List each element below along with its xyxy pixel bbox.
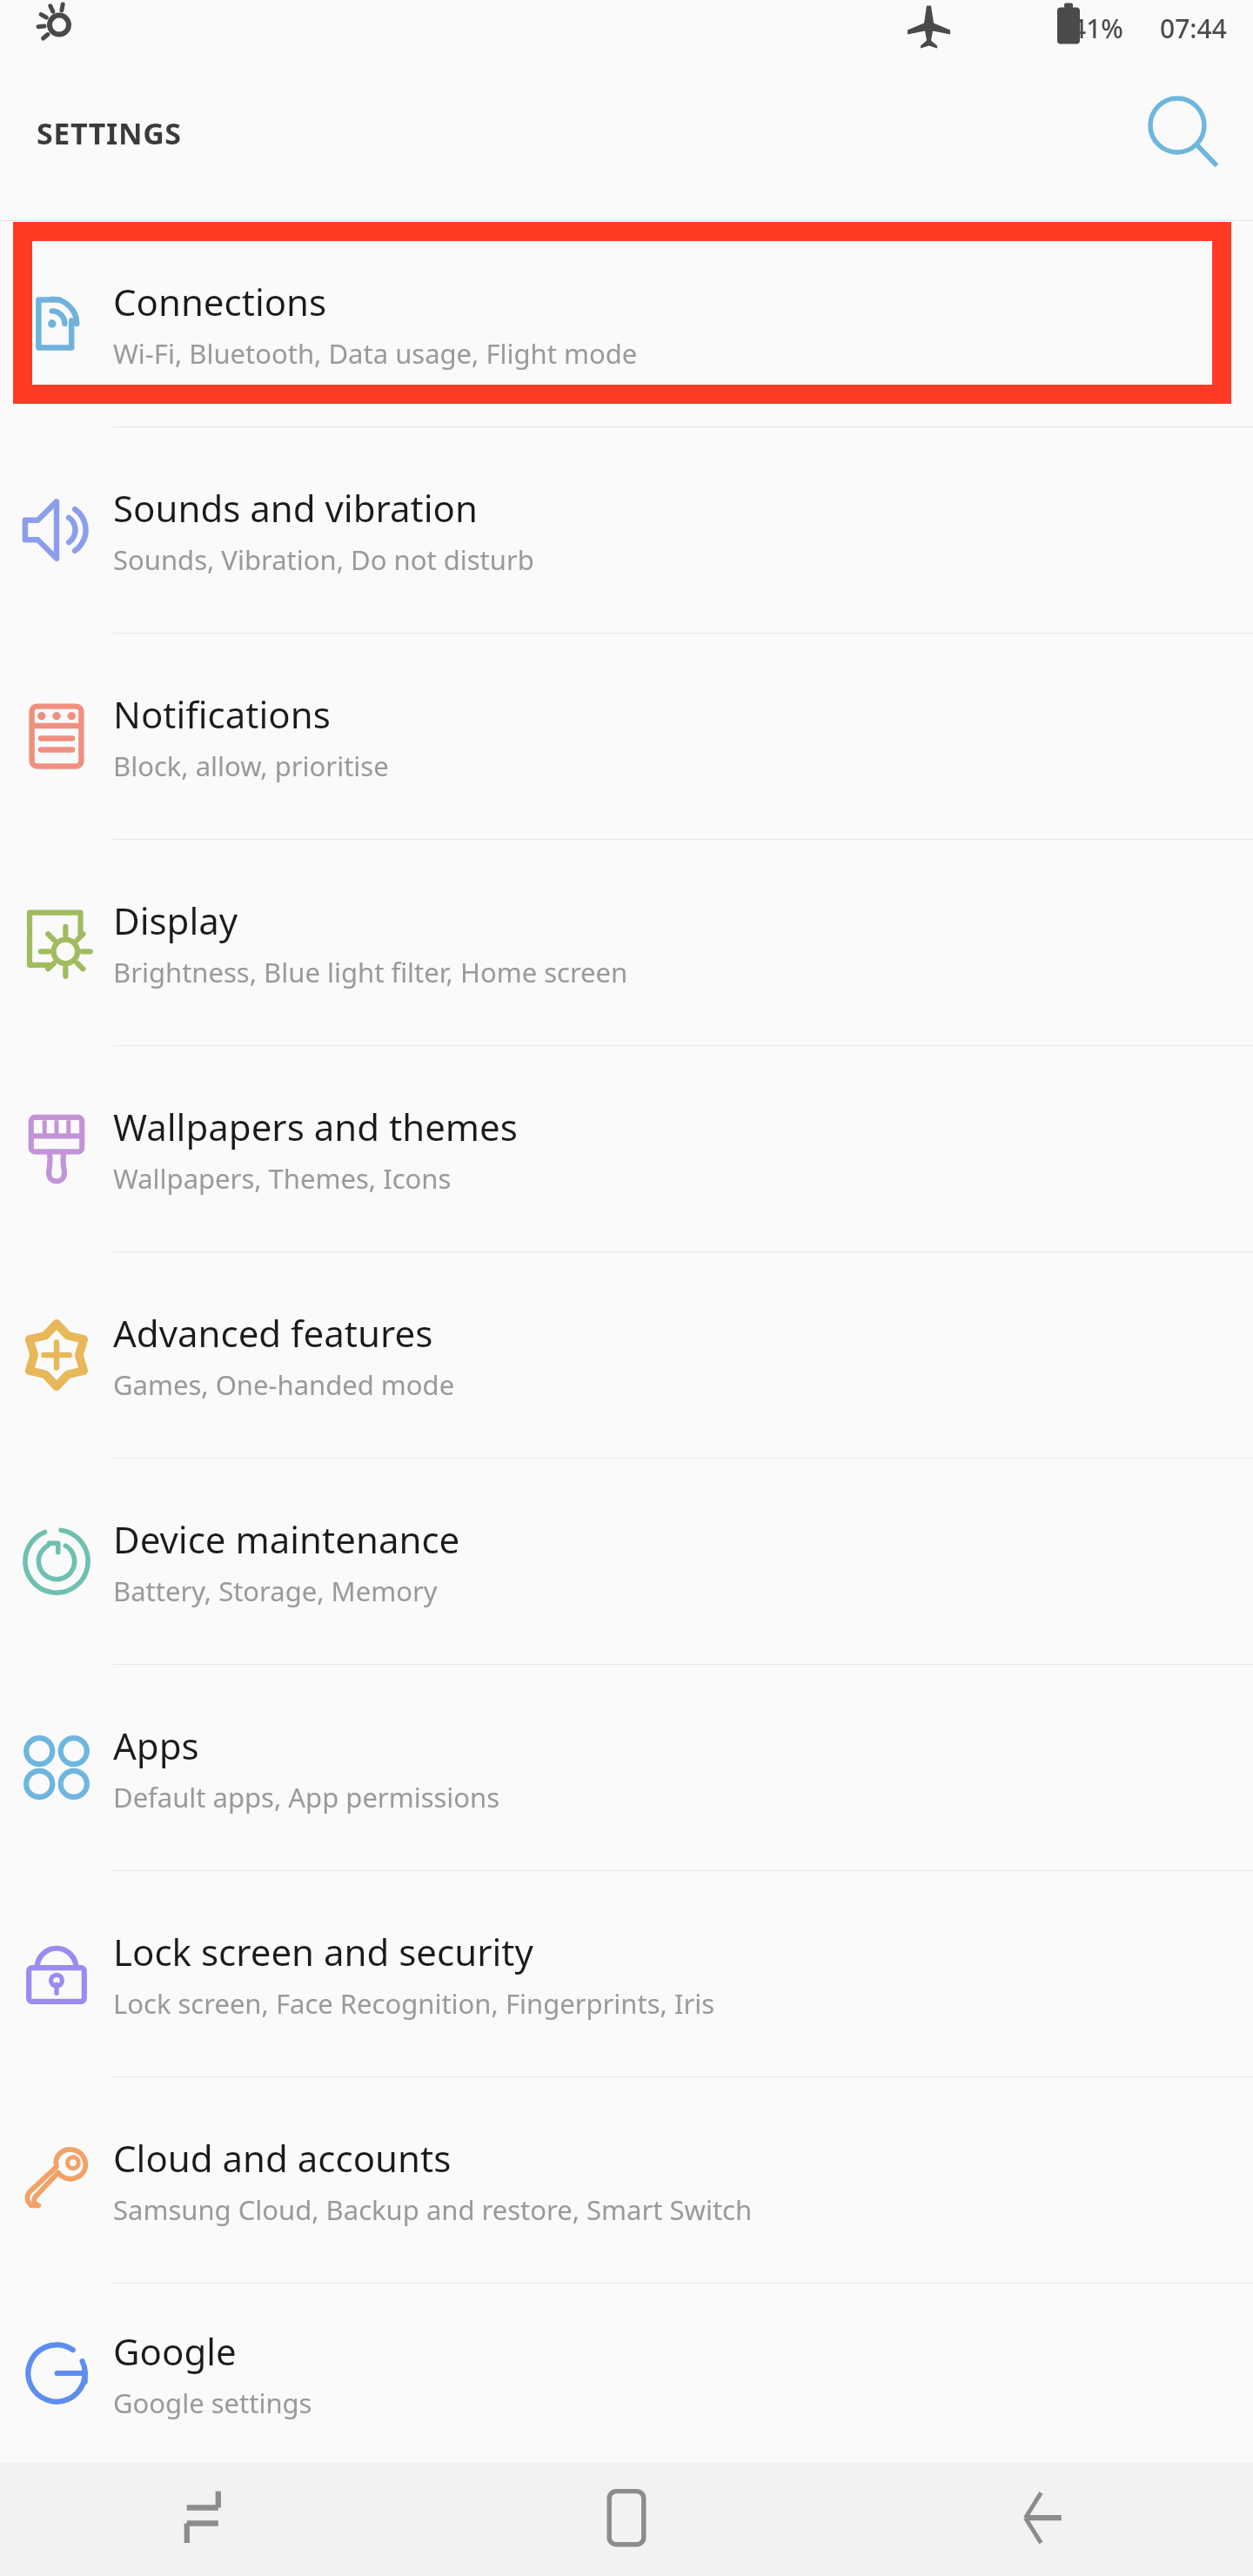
button[interactable]: Advanced features xyxy=(0,1252,1253,1458)
staticText: SETTINGS xyxy=(37,113,182,153)
staticText: Block, allow, prioritise xyxy=(113,748,389,784)
staticText: Apps xyxy=(113,1721,199,1770)
button[interactable]: Sounds and vibration xyxy=(0,427,1253,633)
button[interactable]: Connections xyxy=(0,221,1253,426)
staticText: Games, One-handed mode xyxy=(113,1366,455,1403)
staticText: Sounds, Vibration, Do not disturb xyxy=(113,541,534,578)
staticText: Lock screen and security xyxy=(113,1927,533,1976)
staticText: Notifications xyxy=(113,689,331,739)
staticText: Wallpapers and themes xyxy=(113,1102,518,1151)
staticText: Google settings xyxy=(113,2385,312,2421)
button[interactable]: Back xyxy=(835,2463,1253,2576)
button[interactable]: Search xyxy=(1135,84,1230,180)
button[interactable]: Notifications xyxy=(0,634,1253,839)
staticText: Battery, Storage, Memory xyxy=(113,1573,438,1609)
button[interactable]: Google xyxy=(0,2284,1253,2463)
staticText: Google xyxy=(113,2326,237,2376)
staticText: Device maintenance xyxy=(113,1514,460,1564)
staticText: 41% xyxy=(1071,10,1123,46)
staticText: Wallpapers, Themes, Icons xyxy=(113,1160,452,1197)
staticText: Cloud and accounts xyxy=(113,2133,452,2183)
button[interactable]: Device maintenance xyxy=(0,1459,1253,1664)
staticText: Advanced features xyxy=(113,1308,433,1358)
staticText: Lock screen, Face Recognition, Fingerpri… xyxy=(113,1985,715,2022)
staticText: 07:44 xyxy=(1160,10,1227,46)
staticText: Wi-Fi, Bluetooth, Data usage, Flight mod… xyxy=(113,335,638,372)
staticText: Samsung Cloud, Backup and restore, Smart… xyxy=(113,2191,753,2228)
button[interactable]: Display xyxy=(0,840,1253,1045)
staticText: Default apps, App permissions xyxy=(113,1779,500,1815)
staticText: Display xyxy=(113,896,238,945)
button[interactable]: Wallpapers and themes xyxy=(0,1046,1253,1251)
staticText: Connections xyxy=(113,277,327,326)
button[interactable]: Recent apps xyxy=(0,2463,418,2576)
button[interactable]: Lock screen and security xyxy=(0,1871,1253,2076)
button[interactable]: Home xyxy=(418,2463,835,2576)
button[interactable]: Apps xyxy=(0,1665,1253,1870)
staticText: Brightness, Blue light filter, Home scre… xyxy=(113,954,628,990)
staticText: Sounds and vibration xyxy=(113,483,478,533)
button[interactable]: Cloud and accounts xyxy=(0,2077,1253,2283)
